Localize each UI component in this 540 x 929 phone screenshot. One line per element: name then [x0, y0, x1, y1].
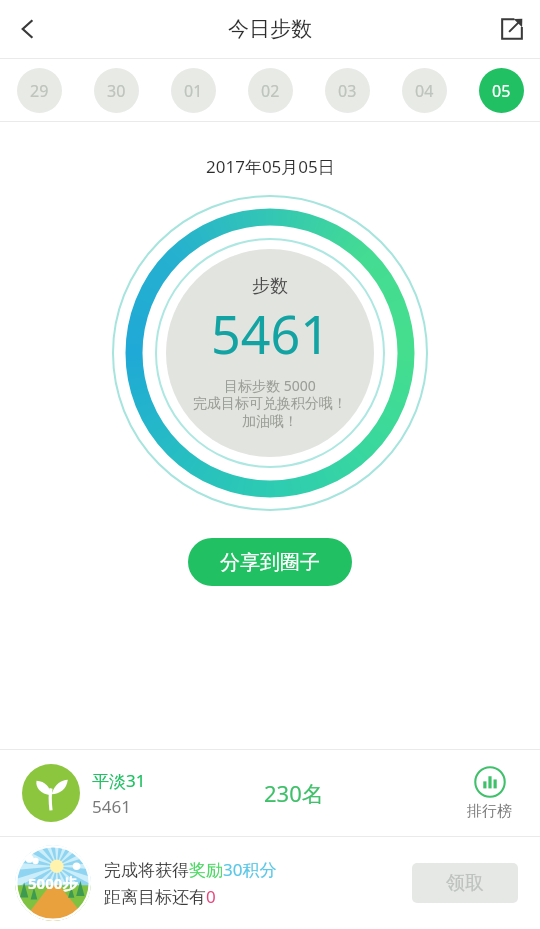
staticText: 排行榜: [467, 802, 512, 821]
button[interactable]: 30: [94, 68, 139, 113]
button[interactable]: 29: [17, 68, 62, 113]
staticText: 30: [107, 80, 126, 102]
button[interactable]: Share: [484, 1, 540, 57]
button[interactable]: 平淡31: [0, 750, 540, 836]
staticText: 5461: [211, 298, 330, 369]
staticText: 距离目标还有0: [104, 885, 216, 908]
staticText: 加油哦！: [242, 413, 298, 431]
staticText: 04: [415, 80, 434, 102]
staticText: 230名: [264, 778, 324, 808]
staticText: 完成目标可兑换积分哦！: [193, 395, 347, 413]
button[interactable]: 01: [171, 68, 216, 113]
staticText: 步数: [252, 275, 288, 298]
staticText: 分享到圈子: [220, 550, 320, 575]
button[interactable]: 领取: [412, 863, 518, 903]
staticText: 01: [184, 80, 203, 102]
staticText: 平淡31: [92, 769, 146, 792]
button[interactable]: 分享到圈子: [188, 538, 352, 586]
button[interactable]: 04: [402, 68, 447, 113]
button[interactable]: 05: [479, 68, 524, 113]
staticText: 29: [30, 80, 49, 102]
staticText: 03: [338, 80, 357, 102]
staticText: 今日步数: [228, 16, 312, 42]
button[interactable]: 03: [325, 68, 370, 113]
staticText: 05: [492, 80, 511, 102]
button[interactable]: 排行榜: [459, 766, 520, 821]
staticText: 02: [261, 80, 280, 102]
staticText: 2017年05月05日: [206, 155, 335, 178]
staticText: 5000步: [28, 873, 78, 893]
staticText: 5461: [92, 795, 131, 818]
button[interactable]: 02: [248, 68, 293, 113]
button[interactable]: Back: [0, 1, 56, 57]
staticText: 领取: [446, 871, 484, 895]
staticText: 完成将获得奖励30积分: [104, 858, 277, 881]
staticText: 目标步数 5000: [224, 376, 316, 395]
